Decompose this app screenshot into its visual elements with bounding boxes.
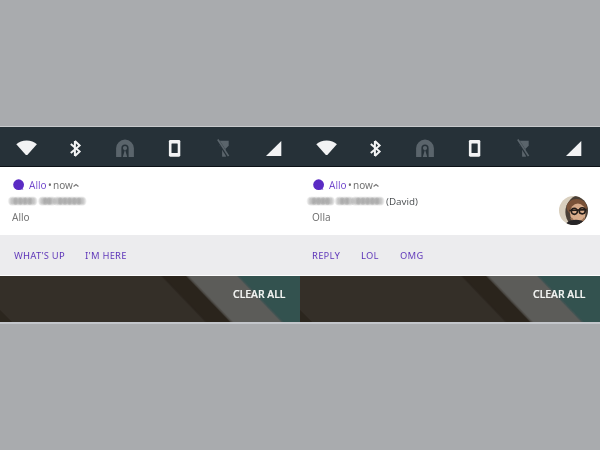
staticText: WHAT'S UP [14,249,65,262]
staticText: • [348,178,352,192]
staticText: now [53,178,73,192]
staticText: CLEAR ALL [233,287,286,301]
staticText: now [353,178,373,192]
button[interactable]: I'M HERE [85,249,127,262]
staticText: OMG [400,249,424,262]
staticText: LOL [361,249,379,262]
staticText: REPLY [312,249,341,262]
button[interactable]: LOL [361,249,379,262]
staticText: • [48,178,52,192]
staticText: Allo [329,178,347,192]
staticText: CLEAR ALL [533,287,586,301]
button[interactable]: Sender photo [559,196,588,225]
other: Status bar [300,127,600,167]
button[interactable]: REPLY [312,249,341,262]
staticText: Olla [312,210,331,224]
staticText: Allo [29,178,47,192]
staticText: Allo [12,210,30,224]
button[interactable]: OMG [400,249,424,262]
button[interactable]: Allo [0,167,300,235]
button[interactable]: CLEAR ALL [233,287,286,301]
other: Status bar [0,127,300,167]
button[interactable]: CLEAR ALL [533,287,586,301]
staticText: I'M HERE [85,249,127,262]
button[interactable]: WHAT'S UP [14,249,65,262]
button[interactable]: Allo [300,167,600,235]
staticText: (David) [386,195,419,208]
